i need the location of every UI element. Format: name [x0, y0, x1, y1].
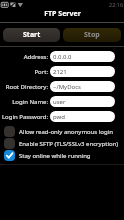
button[interactable]: 2121 [50, 66, 115, 77]
staticText: Stay online while running [19, 152, 91, 160]
staticText: 0.0.0.0 [53, 53, 72, 61]
staticText: user [53, 98, 66, 106]
staticText: Login Password: [1, 113, 48, 121]
staticText: Login Name: [12, 98, 48, 106]
button[interactable]: ~/MyDocs [50, 81, 115, 92]
staticText: Address: [23, 53, 48, 61]
staticText: Port: [34, 68, 48, 76]
staticText: pwd [53, 113, 65, 121]
staticText: Stop [84, 30, 100, 40]
button[interactable]: user [50, 96, 115, 107]
staticText: Allow read-only anonymous login [19, 128, 113, 136]
button[interactable]: Start [3, 28, 60, 42]
staticText: FTP Server [44, 9, 81, 19]
button[interactable]: 0.0.0.0 [50, 51, 115, 62]
staticText: Root Directory: [5, 83, 48, 91]
staticText: 2121 [53, 68, 67, 76]
button[interactable]: pwd [50, 111, 115, 122]
staticText: Start [23, 30, 41, 40]
button[interactable]: Enable SFTP (TLS/SSLv3 encryption) [4, 138, 124, 149]
staticText: 22:16 [109, 1, 124, 8]
button[interactable]: Stay online while running [4, 150, 124, 161]
button[interactable]: Stop [63, 28, 121, 42]
staticText: ~/MyDocs [53, 83, 81, 91]
button[interactable]: Allow read-only anonymous login [4, 126, 124, 137]
staticText: Enable SFTP (TLS/SSLv3 encryption) [19, 140, 119, 148]
